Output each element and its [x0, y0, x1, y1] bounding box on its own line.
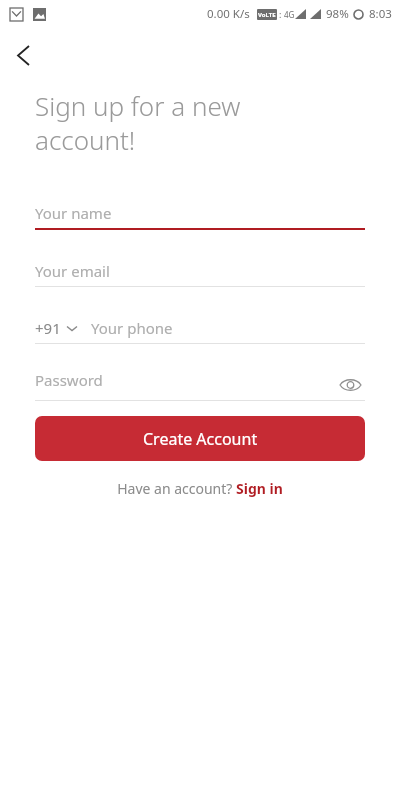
staticText: Your email [35, 261, 110, 281]
staticText: 8:03 [369, 6, 392, 22]
staticText: +91 [35, 318, 61, 338]
staticText: 4G [284, 9, 295, 20]
staticText: Sign up for a new account! [35, 88, 241, 157]
button[interactable]: +91 [35, 313, 365, 344]
button[interactable]: Your name [35, 198, 365, 230]
button[interactable]: Password [35, 370, 365, 401]
staticText: Create Account [143, 428, 258, 450]
staticText: : [279, 8, 282, 20]
staticText: Your phone [91, 318, 173, 338]
button[interactable]: Back [6, 38, 40, 72]
staticText: Have an account? Sign in [117, 479, 283, 498]
staticText: 0.00 K/s [207, 6, 250, 22]
staticText: VoLTE [258, 11, 276, 19]
button[interactable]: Have an account? Sign in [117, 479, 283, 498]
button[interactable]: Your email [35, 256, 365, 287]
staticText: Password [35, 370, 103, 390]
staticText: 98% [326, 6, 349, 22]
staticText: Your name [35, 203, 112, 223]
button[interactable]: Create Account [35, 416, 365, 461]
button[interactable]: +91 [35, 318, 77, 338]
button[interactable]: Show password [335, 370, 365, 400]
